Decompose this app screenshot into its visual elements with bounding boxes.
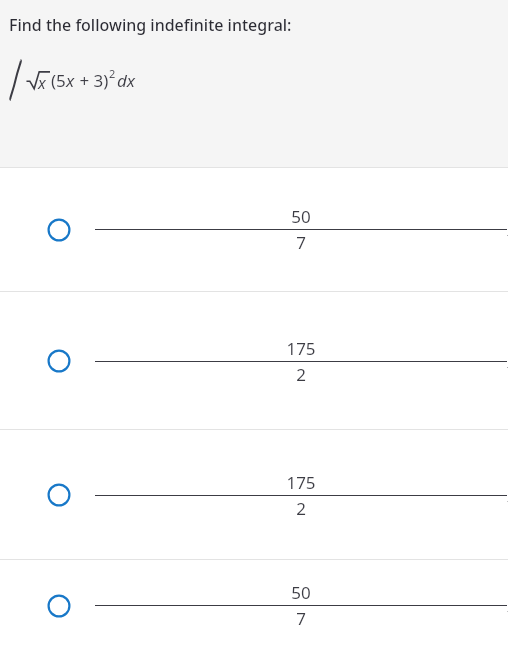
staticText: 7 [296,607,306,630]
staticText: x [66,69,75,92]
button[interactable]: Answer option 4 [0,560,508,651]
staticText: dx [117,69,136,92]
staticText: 2 [296,497,306,520]
button[interactable]: Answer option 3 [0,430,508,559]
staticText: Find the following indefinite integral: [9,14,292,36]
button[interactable]: Answer option 2 [0,292,508,429]
staticText: + 3) [75,69,109,92]
staticText: 2 [296,363,306,386]
staticText: 50 [291,205,311,228]
staticText: 175 [286,471,316,494]
staticText: 50 [291,581,311,604]
staticText: 175 [286,337,316,360]
staticText: x [38,72,46,94]
staticText: 7 [296,231,306,254]
staticText: (5 [51,69,66,92]
staticText: 2 [109,66,116,81]
button[interactable]: Answer option 1 [0,168,508,291]
